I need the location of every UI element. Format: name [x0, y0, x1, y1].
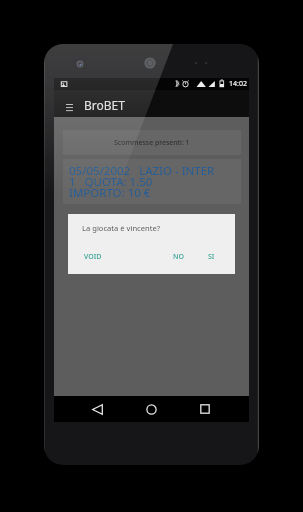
staticText: VOID: [84, 252, 102, 262]
staticText: BroBET: [84, 97, 125, 113]
staticText: La giocata è vincente?: [82, 223, 161, 233]
button[interactable]: NO: [168, 250, 189, 264]
staticText: 14:02: [229, 79, 247, 89]
staticText: IMPORTO: 10 €: [69, 185, 151, 201]
staticText: 05/05/2002 LAZIO - INTER: [69, 163, 215, 179]
button[interactable]: VOID: [79, 250, 107, 264]
staticText: NO: [173, 252, 184, 262]
button[interactable]: Open navigation menu: [58, 96, 80, 118]
button[interactable]: SI: [203, 250, 220, 264]
staticText: Scommesse presenti: 1: [114, 138, 190, 148]
staticText: SI: [208, 252, 215, 262]
staticText: 1 QUOTA: 1.50: [69, 174, 153, 190]
button[interactable]: Back: [83, 396, 111, 422]
button[interactable]: Home: [137, 396, 165, 422]
button[interactable]: 05/05/2002 LAZIO - INTER: [63, 159, 241, 204]
button[interactable]: Recent apps: [191, 396, 219, 422]
